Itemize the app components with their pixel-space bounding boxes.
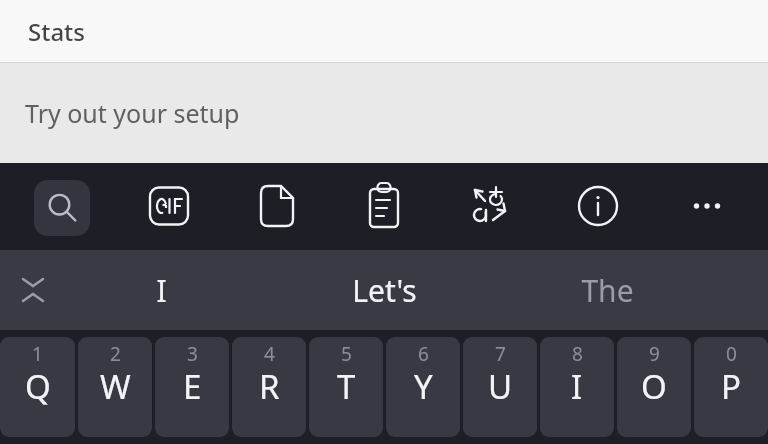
staticText: P xyxy=(721,364,741,409)
staticText: 4 xyxy=(264,341,275,367)
button[interactable]: 0 xyxy=(694,337,768,437)
staticText: 8 xyxy=(572,341,583,367)
button[interactable]: Try out your setup xyxy=(0,63,768,163)
staticText: T xyxy=(337,364,356,409)
staticText: Let's xyxy=(352,270,417,311)
staticText: Stats xyxy=(28,15,85,48)
staticText: Try out your setup xyxy=(25,96,240,130)
button[interactable]: Search xyxy=(34,180,90,236)
staticText: 1 xyxy=(32,341,43,367)
staticText: 5 xyxy=(341,341,352,367)
button[interactable]: Translate xyxy=(462,178,518,234)
button[interactable]: Clipboard xyxy=(356,178,412,234)
staticText: The xyxy=(581,270,634,311)
staticText: I xyxy=(156,270,167,311)
staticText: Y xyxy=(414,364,433,409)
button[interactable]: 5 xyxy=(309,337,383,437)
staticText: 7 xyxy=(495,341,506,367)
button[interactable]: The xyxy=(527,250,687,330)
staticText: 9 xyxy=(649,341,660,367)
staticText: I xyxy=(571,364,583,409)
staticText: Q xyxy=(25,364,51,409)
staticText: U xyxy=(488,364,513,409)
button[interactable]: 2 xyxy=(78,337,152,437)
staticText: W xyxy=(100,364,131,409)
button[interactable]: 3 xyxy=(155,337,229,437)
staticText: 0 xyxy=(726,341,737,367)
button[interactable]: Let's xyxy=(304,250,464,330)
staticText: 3 xyxy=(187,341,198,367)
staticText: 2 xyxy=(110,341,121,367)
button[interactable]: More options xyxy=(679,178,735,234)
button[interactable]: Info xyxy=(570,178,626,234)
button[interactable]: 9 xyxy=(617,337,691,437)
button[interactable]: 1 xyxy=(0,337,75,437)
button[interactable]: 8 xyxy=(540,337,614,437)
button[interactable]: 6 xyxy=(386,337,460,437)
button[interactable]: I xyxy=(81,250,241,330)
button[interactable]: Stickers xyxy=(249,178,305,234)
button[interactable]: Expand suggestions xyxy=(10,267,56,313)
button[interactable]: 7 xyxy=(463,337,537,437)
button[interactable]: GIF xyxy=(141,178,197,234)
staticText: R xyxy=(259,364,280,409)
button[interactable]: 4 xyxy=(232,337,306,437)
staticText: 6 xyxy=(418,341,429,367)
staticText: E xyxy=(183,364,202,409)
staticText: O xyxy=(641,364,667,409)
